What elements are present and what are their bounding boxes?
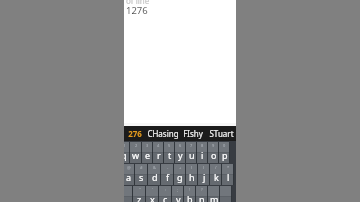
staticText: e (145, 149, 151, 161)
button[interactable]: f (161, 164, 174, 185)
staticText: FIshy (183, 128, 203, 139)
button[interactable]: r (153, 142, 164, 163)
staticText: & (153, 165, 156, 170)
staticText: 4 (157, 143, 160, 148)
button[interactable]: l (222, 164, 234, 185)
button[interactable]: e (142, 142, 153, 163)
button[interactable]: CHasing (146, 126, 179, 141)
button[interactable]: h (186, 164, 198, 185)
staticText: s (139, 171, 144, 183)
staticText: u (189, 149, 195, 161)
staticText: 1276 (126, 4, 148, 17)
staticText: x (150, 193, 155, 202)
staticText: ? (201, 187, 203, 192)
staticText: 5 (168, 143, 171, 148)
staticText: d (152, 171, 158, 183)
staticText: h (189, 171, 195, 183)
button[interactable]: j (198, 164, 210, 185)
staticText: k (214, 171, 219, 183)
button[interactable]: s (135, 164, 148, 185)
staticText: / (215, 165, 217, 170)
button[interactable]: i (197, 142, 208, 163)
staticText: 6 (179, 143, 182, 148)
button[interactable]: q (124, 142, 130, 163)
staticText: ( (191, 165, 193, 170)
button[interactable]: FIshy (179, 126, 206, 141)
staticText: 3 (146, 143, 149, 148)
staticText: : (165, 187, 167, 192)
staticText: 2 (135, 143, 138, 148)
button[interactable]: of line (124, 0, 236, 126)
staticText: f (166, 171, 170, 183)
button[interactable]: b (184, 186, 196, 202)
button[interactable]: d (148, 164, 161, 185)
staticText: 8 (201, 143, 204, 148)
staticText: STuart (209, 128, 234, 139)
staticText: of line (126, 0, 150, 6)
button[interactable]: x (146, 186, 159, 202)
staticText: j (203, 171, 206, 183)
staticText: c (163, 193, 168, 202)
staticText: b (187, 193, 193, 202)
button[interactable]: 276 (124, 126, 146, 141)
staticText: a (126, 171, 132, 183)
staticText: v (176, 193, 181, 202)
button[interactable]: p (219, 142, 230, 163)
staticText: ! (189, 187, 191, 192)
staticText: 9 (212, 143, 215, 148)
button[interactable]: u (186, 142, 197, 163)
staticText: y (178, 149, 183, 161)
button[interactable]: z (133, 186, 146, 202)
button[interactable]: v (172, 186, 184, 202)
staticText: p (222, 149, 228, 161)
button[interactable]: k (210, 164, 222, 185)
button[interactable]: t (164, 142, 175, 163)
staticText: r (157, 149, 161, 161)
button[interactable]: key (124, 186, 133, 202)
staticText: n (199, 193, 205, 202)
staticText: l (227, 171, 230, 183)
button[interactable]: c (159, 186, 172, 202)
staticText: 276 (128, 128, 142, 139)
button[interactable]: w (130, 142, 142, 163)
staticText: CHasing (147, 128, 179, 139)
staticText: * (227, 165, 230, 170)
staticText: q (124, 149, 127, 161)
button[interactable]: y (175, 142, 186, 163)
staticText: i (201, 149, 204, 161)
staticText: ; (177, 187, 179, 192)
staticText: 0 (223, 143, 226, 148)
button[interactable]: n (196, 186, 208, 202)
staticText: g (177, 171, 183, 183)
button[interactable]: a (124, 164, 135, 185)
staticText: 7 (190, 143, 193, 148)
button[interactable]: key (220, 186, 232, 202)
button[interactable]: o (208, 142, 219, 163)
button[interactable]: g (174, 164, 186, 185)
staticText: z (137, 193, 142, 202)
staticText: ) (203, 165, 205, 170)
staticText: - (167, 165, 169, 170)
staticText: t (168, 149, 172, 161)
staticText: ' (152, 187, 153, 192)
staticText: + (179, 165, 182, 170)
staticText: w (132, 149, 140, 161)
staticText: @ (127, 165, 131, 170)
staticText: # (140, 165, 143, 170)
staticText: o (211, 149, 217, 161)
staticText: " (139, 187, 141, 192)
button[interactable]: m (208, 186, 220, 202)
staticText: m (210, 193, 219, 202)
button[interactable]: STuart (206, 126, 236, 141)
staticText: 1 (124, 143, 126, 148)
